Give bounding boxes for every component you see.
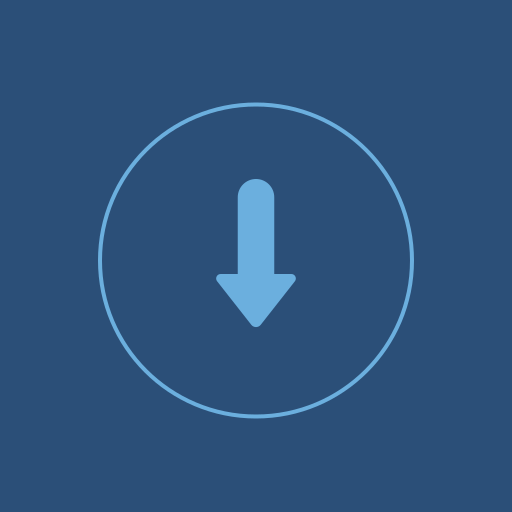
button[interactable]: Download — [100, 104, 412, 416]
